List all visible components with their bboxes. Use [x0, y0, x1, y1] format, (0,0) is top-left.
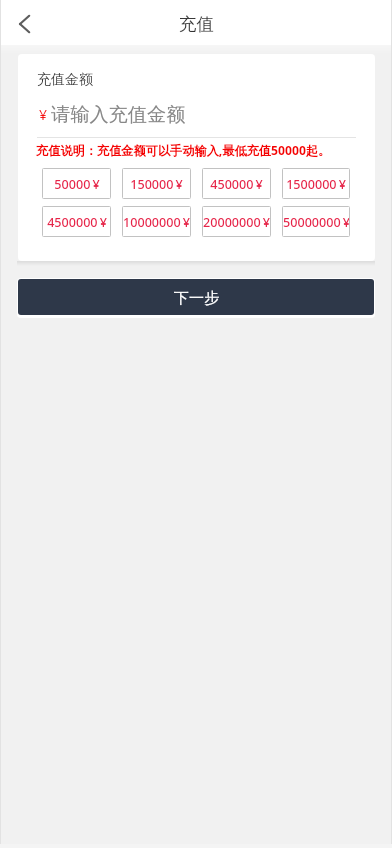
- staticText: 4500000 ¥: [47, 214, 107, 231]
- button[interactable]: 1500000 ¥: [282, 168, 350, 199]
- button[interactable]: 下一步: [18, 279, 374, 315]
- staticText: 充值: [179, 13, 214, 35]
- button[interactable]: 20000000 ¥: [202, 206, 271, 237]
- staticText: 1500000 ¥: [286, 176, 346, 193]
- staticText: 50000 ¥: [54, 176, 100, 193]
- staticText: 请输入充值金额: [51, 103, 186, 127]
- staticText: 充值金额: [37, 71, 93, 89]
- button[interactable]: 450000 ¥: [202, 168, 271, 199]
- staticText: 充值说明：充值金额可以手动输入,最低充值50000起。: [36, 142, 331, 159]
- staticText: 下一步: [174, 289, 219, 308]
- button[interactable]: 4500000 ¥: [42, 206, 111, 237]
- staticText: 50000000 ¥: [283, 214, 350, 231]
- button[interactable]: Back: [0, 0, 49, 45]
- staticText: 20000000 ¥: [203, 214, 270, 231]
- button[interactable]: 10000000 ¥: [122, 206, 191, 237]
- button[interactable]: 50000000 ¥: [282, 206, 350, 237]
- button[interactable]: 150000 ¥: [122, 168, 191, 199]
- button[interactable]: 50000 ¥: [42, 168, 111, 199]
- staticText: 150000 ¥: [130, 176, 183, 193]
- staticText: ¥: [39, 105, 48, 124]
- staticText: 10000000 ¥: [123, 214, 190, 231]
- staticText: 450000 ¥: [210, 176, 263, 193]
